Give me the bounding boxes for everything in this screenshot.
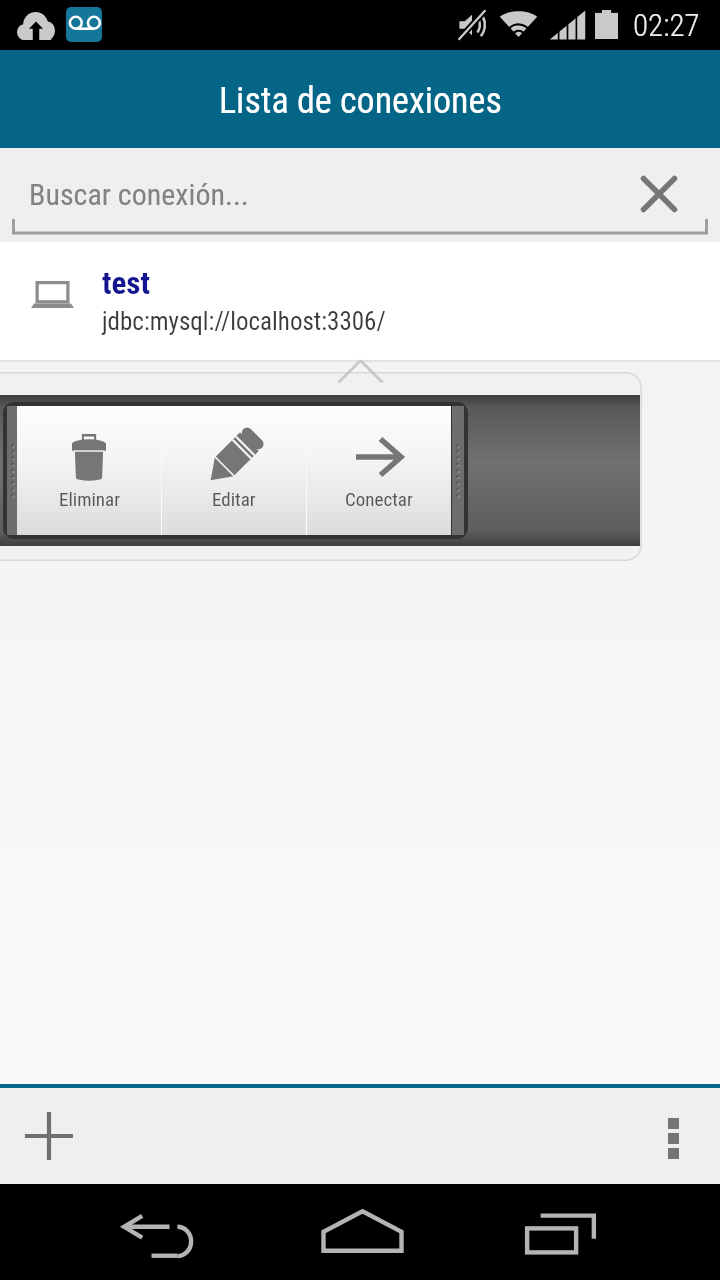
button[interactable]: More options <box>637 1102 710 1175</box>
button[interactable]: Eliminar <box>17 406 161 535</box>
button[interactable]: Add connection <box>12 1099 85 1172</box>
button[interactable]: Home <box>302 1184 422 1280</box>
staticText: Buscar conexión... <box>29 177 249 212</box>
staticText: test <box>102 265 150 301</box>
staticText: jdbc:mysql://localhost:3306/ <box>102 307 386 336</box>
staticText: Lista de conexiones <box>219 80 502 122</box>
button[interactable]: Clear search <box>630 165 688 223</box>
button[interactable]: Editar <box>162 406 306 535</box>
staticText: Editar <box>212 488 256 510</box>
button[interactable]: test <box>0 242 720 362</box>
staticText: Conectar <box>345 488 413 510</box>
button[interactable]: Conectar <box>307 406 451 535</box>
button[interactable]: Back <box>98 1184 218 1280</box>
button[interactable]: Recent apps <box>500 1184 620 1280</box>
staticText: 02:27 <box>633 7 700 43</box>
staticText: Eliminar <box>59 488 120 510</box>
